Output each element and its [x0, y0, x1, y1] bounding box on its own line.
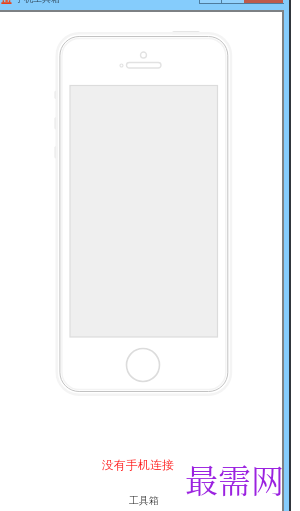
button[interactable]: Toolbox — [0, 494, 288, 507]
staticText: 没有手机连接 — [102, 457, 174, 472]
staticText: 手机工具箱 — [15, 0, 60, 4]
button[interactable]: Application menu — [0, 0, 120, 9]
staticText: 最需网 — [185, 455, 284, 502]
button[interactable]: No phone connected — [0, 457, 276, 472]
button[interactable]: Minimize — [199, 0, 221, 3]
staticText: 工具箱 — [129, 494, 159, 507]
